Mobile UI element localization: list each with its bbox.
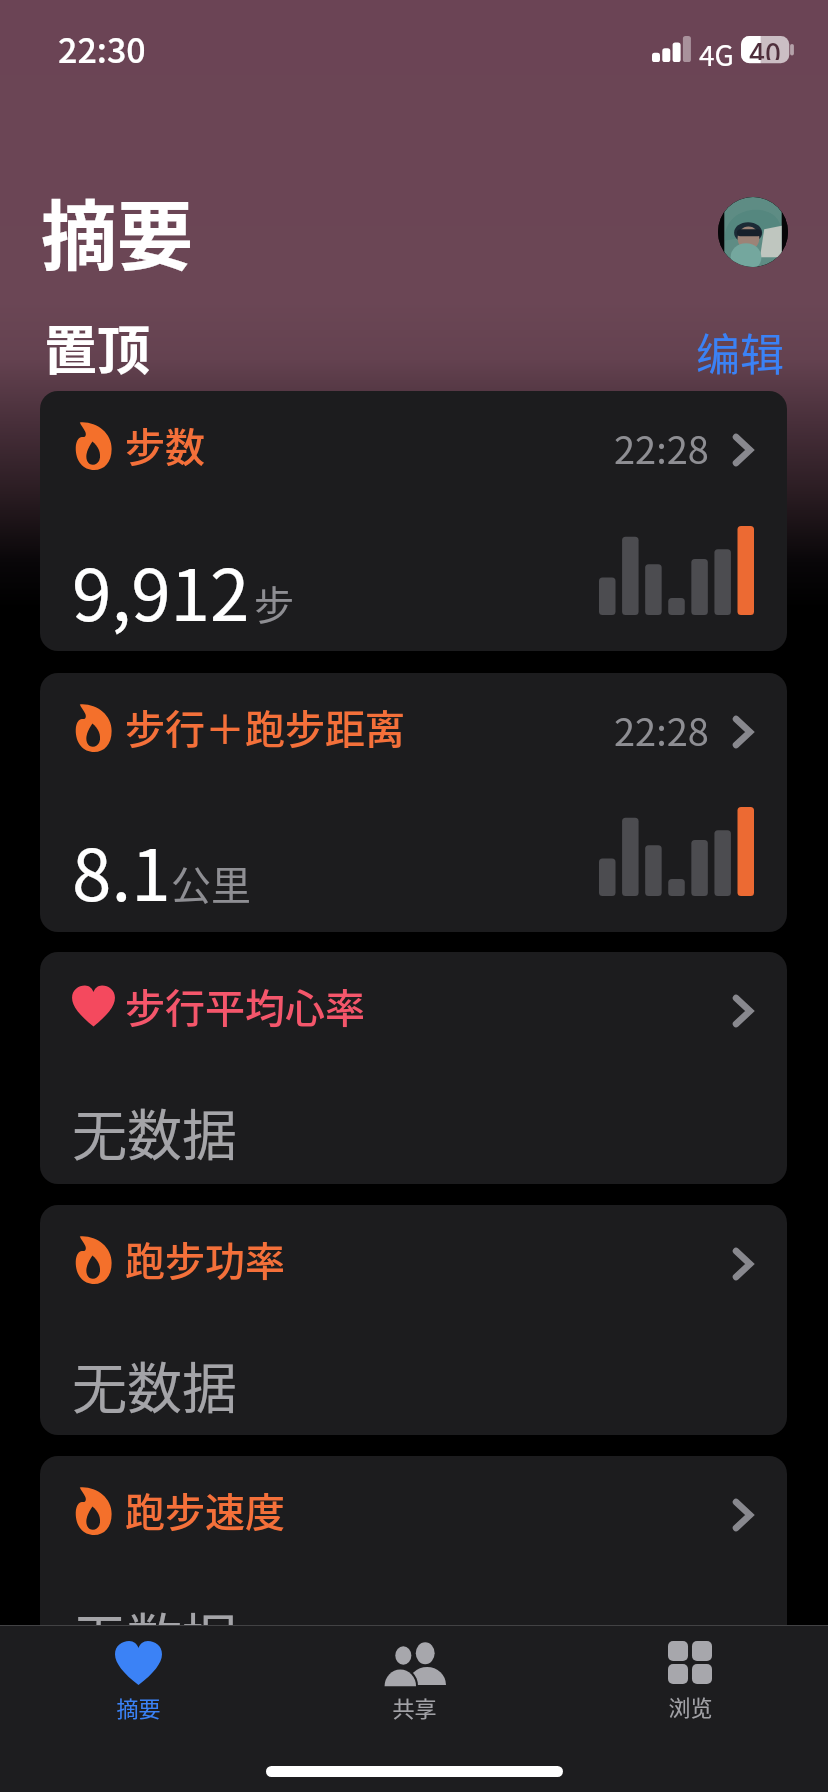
staticText: 跑步功率 — [125, 1230, 285, 1288]
button[interactable]: 跑步速度 — [40, 1456, 787, 1686]
staticText: 4G — [699, 34, 734, 75]
staticText: 编辑 — [696, 320, 784, 384]
button[interactable]: 摘要 — [0, 1625, 276, 1740]
button[interactable]: 编辑 — [696, 320, 784, 384]
button[interactable]: 浏览 — [552, 1625, 828, 1740]
staticText: 摘要 — [116, 1691, 161, 1723]
staticText: 置顶 — [44, 309, 150, 386]
staticText: 22:28 — [614, 420, 709, 475]
button[interactable]: 共享 — [276, 1625, 552, 1740]
staticText: 9,912 — [72, 539, 250, 642]
button[interactable]: 步行平均心率 — [40, 952, 787, 1184]
staticText: 8.1 — [72, 819, 171, 922]
button[interactable]: 跑步功率 — [40, 1205, 787, 1435]
staticText: 无数据 — [72, 1091, 238, 1171]
staticText: 40 — [749, 32, 781, 60]
staticText: 无数据 — [72, 1344, 238, 1424]
staticText: 公里 — [171, 854, 251, 912]
staticText: 浏览 — [668, 1690, 713, 1722]
staticText: 步 — [254, 574, 294, 632]
staticText: 共享 — [392, 1691, 437, 1723]
staticText: 摘要 — [41, 176, 193, 286]
staticText: 步行平均心率 — [125, 977, 365, 1035]
button[interactable]: 步数 — [40, 391, 787, 651]
button[interactable]: 步行＋跑步距离 — [40, 673, 787, 932]
staticText: 22:28 — [614, 702, 709, 757]
staticText: 无数据 — [72, 1595, 238, 1675]
staticText: 跑步速度 — [125, 1481, 285, 1539]
staticText: 22:30 — [58, 24, 146, 73]
staticText: 步数 — [125, 416, 205, 474]
button[interactable]: Profile — [718, 197, 788, 267]
staticText: 步行＋跑步距离 — [125, 698, 405, 756]
